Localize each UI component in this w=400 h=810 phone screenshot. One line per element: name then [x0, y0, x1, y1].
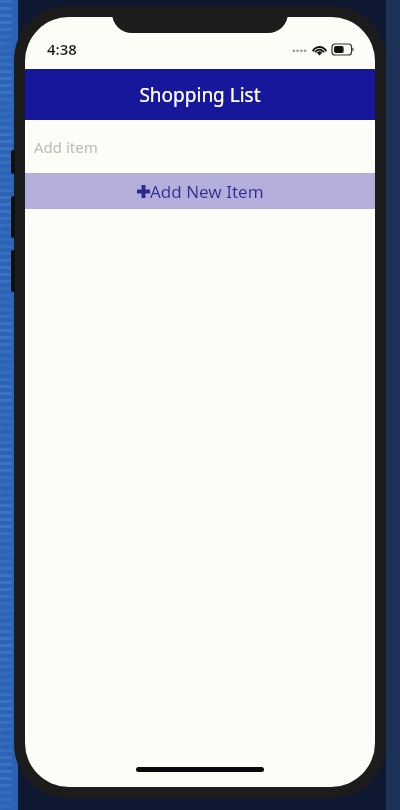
staticText: Add New Item	[150, 180, 264, 203]
staticText: Shopping List	[139, 82, 261, 108]
other: Add	[137, 185, 150, 198]
button[interactable]: Add item	[25, 120, 375, 173]
staticText: 4:38	[47, 39, 77, 59]
button[interactable]: Add	[25, 173, 375, 209]
staticText: Add item	[34, 137, 98, 157]
